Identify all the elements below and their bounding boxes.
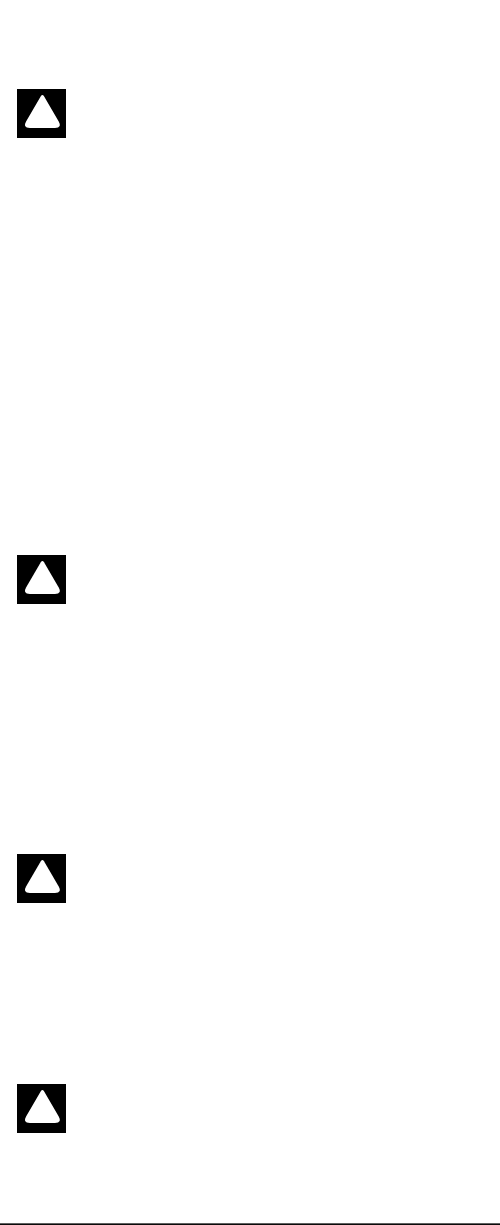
button[interactable]: Open entry 4 [0, 1084, 500, 1225]
button[interactable]: Open entry 1 [0, 89, 500, 555]
button[interactable]: Open entry 3 [0, 854, 500, 1084]
button[interactable]: Open entry 2 [17, 555, 66, 604]
button[interactable]: Open entry 1 [17, 89, 66, 138]
button[interactable]: Open entry 2 [0, 555, 500, 854]
button[interactable]: Open entry 3 [17, 854, 66, 903]
button[interactable]: Open entry 4 [17, 1084, 66, 1133]
